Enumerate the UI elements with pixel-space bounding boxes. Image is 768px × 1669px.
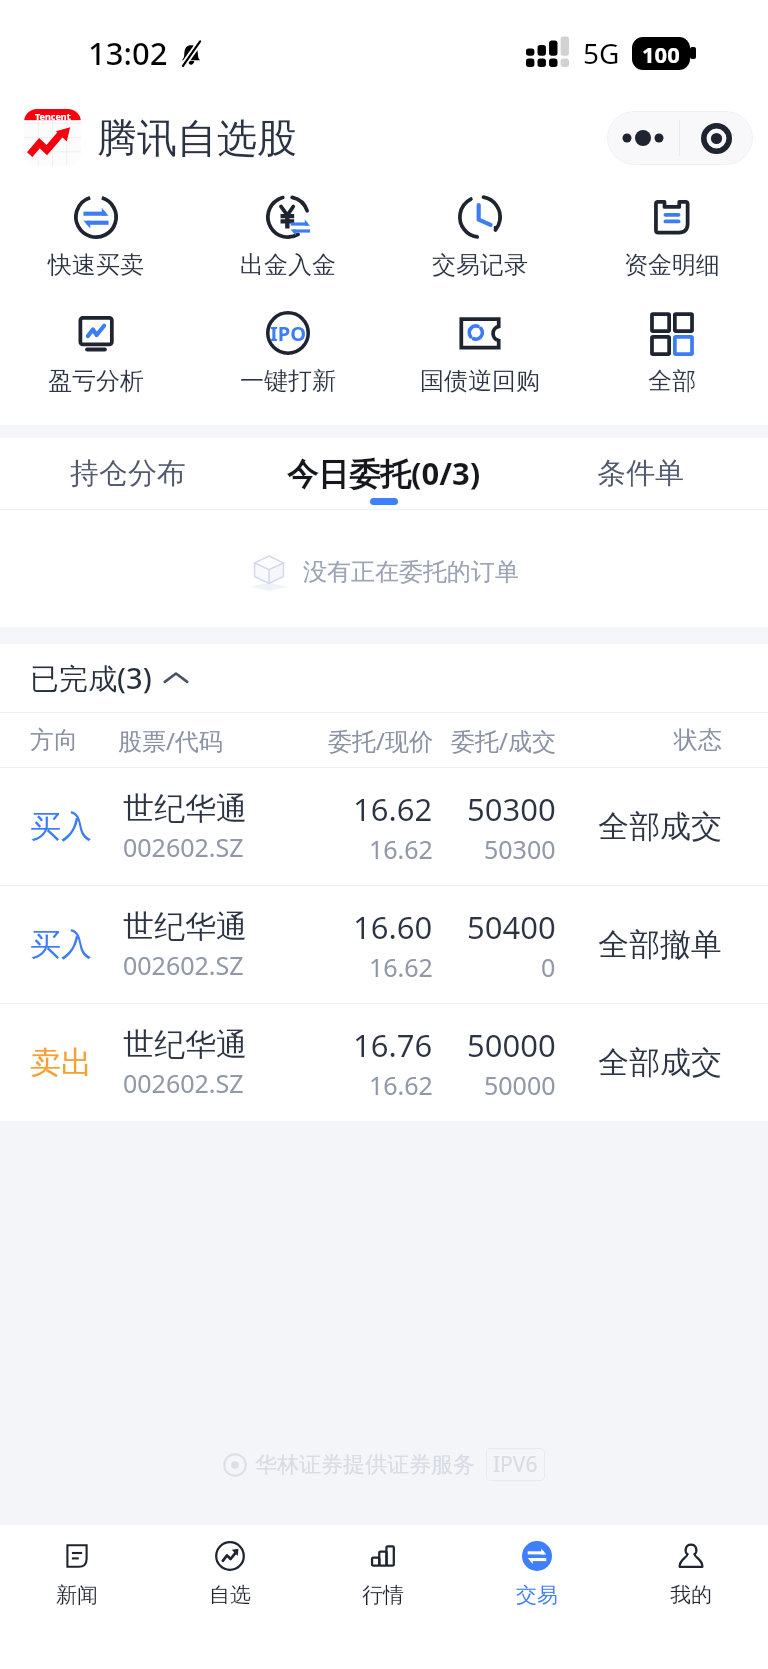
staticText: 条件单 <box>597 455 684 492</box>
staticText: 盈亏分析 <box>48 366 144 396</box>
button[interactable]: 新闻 <box>0 1541 153 1621</box>
staticText: 快速买卖 <box>48 250 144 280</box>
staticText: 资金明细 <box>624 250 720 280</box>
staticText: 股票/代码 <box>118 724 325 757</box>
staticText: 世纪华通 <box>123 907 247 946</box>
button[interactable]: 资金明细 <box>576 195 768 280</box>
staticText: 没有正在委托的订单 <box>303 557 519 587</box>
staticText: 50000 <box>484 1068 556 1102</box>
button[interactable]: 交易记录 <box>384 195 576 280</box>
staticText: 行情 <box>362 1582 404 1608</box>
staticText: 交易记录 <box>432 250 528 280</box>
staticText: 交易 <box>516 1582 558 1608</box>
staticText: 全部撤单 <box>556 925 722 964</box>
staticText: 13:02 <box>88 32 168 74</box>
staticText: 全部 <box>648 366 696 396</box>
staticText: 买入 <box>30 925 118 964</box>
button[interactable]: 出金入金 <box>192 195 384 280</box>
button[interactable]: 自选 <box>153 1541 306 1621</box>
staticText: 持仓分布 <box>70 455 186 492</box>
button[interactable]: App icon <box>24 109 81 166</box>
staticText: 5G <box>583 34 620 72</box>
staticText: IPV6 <box>493 1450 538 1479</box>
staticText: 100 <box>642 39 680 69</box>
staticText: 新闻 <box>56 1582 98 1608</box>
staticText: 16.62 <box>369 1068 433 1102</box>
staticText: 一键打新 <box>240 366 336 396</box>
staticText: 002602.SZ <box>123 1066 244 1100</box>
staticText: 国债逆回购 <box>420 366 540 396</box>
staticText: 卖出 <box>30 1043 118 1082</box>
button[interactable]: 我的 <box>614 1541 768 1621</box>
button[interactable]: 持仓分布 <box>0 448 256 509</box>
button[interactable]: Close mini program <box>680 111 753 165</box>
button[interactable]: 买入 <box>0 768 768 885</box>
staticText: 16.62 <box>369 950 433 984</box>
staticText: 50000 <box>467 1024 556 1066</box>
button[interactable]: 快速买卖 <box>0 195 192 280</box>
button[interactable]: 盈亏分析 <box>0 311 192 396</box>
button[interactable]: 全部 <box>576 311 768 396</box>
button[interactable]: 买入 <box>0 886 768 1003</box>
staticText: 16.60 <box>353 906 433 948</box>
staticText: 16.76 <box>353 1024 433 1066</box>
button[interactable]: IPO <box>192 311 384 396</box>
staticText: 已完成(3) <box>30 658 152 698</box>
staticText: 全部成交 <box>556 1043 722 1082</box>
staticText: 002602.SZ <box>123 948 244 982</box>
staticText: 华林证券提供证券服务 <box>255 1451 475 1479</box>
staticText: 16.62 <box>369 832 433 866</box>
staticText: 委托/现价 <box>325 724 433 757</box>
staticText: 50400 <box>467 906 556 948</box>
staticText: 50300 <box>467 788 556 830</box>
staticText: 自选 <box>209 1582 251 1608</box>
staticText: Tencent <box>35 110 71 122</box>
button[interactable]: 条件单 <box>512 448 768 509</box>
button[interactable]: 已完成(3) <box>0 644 768 712</box>
staticText: 状态 <box>556 725 722 755</box>
staticText: 方向 <box>30 725 118 755</box>
button[interactable]: More options <box>607 111 679 165</box>
staticText: 我的 <box>670 1582 712 1608</box>
staticText: 腾讯自选股 <box>97 113 297 163</box>
button[interactable]: 今日委托(0/3) <box>256 448 512 509</box>
staticText: 出金入金 <box>240 250 336 280</box>
button[interactable]: 卖出 <box>0 1004 768 1121</box>
staticText: 0 <box>541 950 556 984</box>
staticText: 002602.SZ <box>123 830 244 864</box>
button[interactable]: 交易 <box>460 1541 614 1621</box>
staticText: 世纪华通 <box>123 789 247 828</box>
staticText: 委托/成交 <box>433 724 556 757</box>
staticText: 全部成交 <box>556 807 722 846</box>
staticText: 50300 <box>484 832 556 866</box>
staticText: 买入 <box>30 807 118 846</box>
button[interactable]: 国债逆回购 <box>384 311 576 396</box>
staticText: 今日委托(0/3) <box>287 452 481 494</box>
staticText: IPO <box>270 320 307 347</box>
button[interactable]: 行情 <box>306 1541 460 1621</box>
staticText: 16.62 <box>353 788 433 830</box>
staticText: 世纪华通 <box>123 1025 247 1064</box>
